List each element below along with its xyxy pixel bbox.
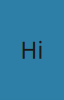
staticText: Hi: [20, 35, 43, 65]
